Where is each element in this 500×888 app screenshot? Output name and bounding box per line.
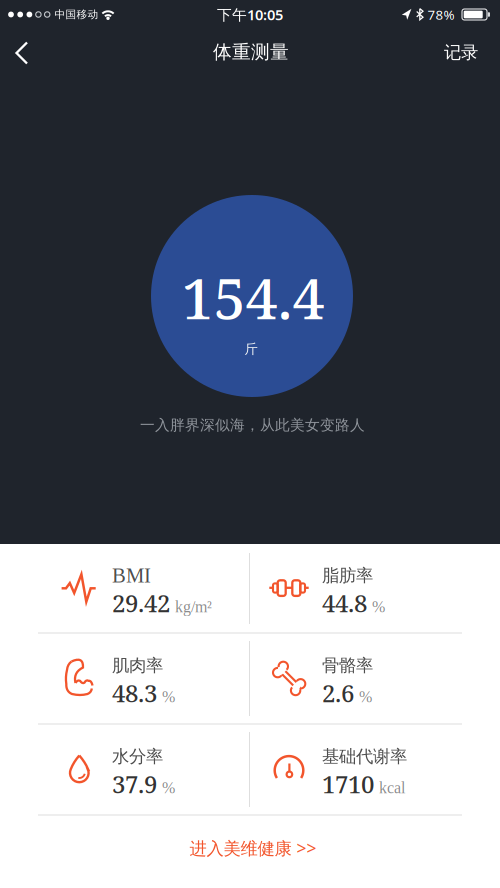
staticText: 骨骼率 <box>322 655 373 676</box>
staticText: 中国移动 <box>54 8 98 21</box>
staticText: % <box>162 779 175 797</box>
staticText: 基础代谢率 <box>322 746 407 767</box>
staticText: 44.8 <box>322 587 367 619</box>
staticText: 78% <box>427 6 454 23</box>
staticText: 37.9 <box>112 768 157 800</box>
staticText: 1710 <box>322 768 374 800</box>
staticText: 水分率 <box>112 746 163 767</box>
staticText: 体重测量 <box>213 40 289 63</box>
button[interactable]: 记录 <box>433 32 489 72</box>
staticText: kg/m² <box>175 598 212 616</box>
button[interactable]: 进入美维健康 >> <box>153 826 353 870</box>
staticText: BMI <box>112 564 151 587</box>
staticText: 斤 <box>244 341 257 357</box>
staticText: kcal <box>379 779 405 797</box>
staticText: % <box>372 598 385 616</box>
staticText: 一入胖界深似海，从此美女变路人 <box>140 416 365 434</box>
staticText: 肌肉率 <box>112 655 163 676</box>
staticText: % <box>162 688 175 706</box>
staticText: 下午10:05 <box>217 5 283 24</box>
staticText: 2.6 <box>322 677 354 709</box>
staticText: 29.42 <box>112 587 170 619</box>
button[interactable] <box>0 34 44 70</box>
staticText: 154.4 <box>181 258 324 336</box>
staticText: 进入美维健康 >> <box>189 836 316 859</box>
staticText: 脂肪率 <box>322 565 373 586</box>
staticText: 48.3 <box>112 677 157 709</box>
staticText: % <box>359 688 372 706</box>
staticText: 记录 <box>444 42 478 63</box>
